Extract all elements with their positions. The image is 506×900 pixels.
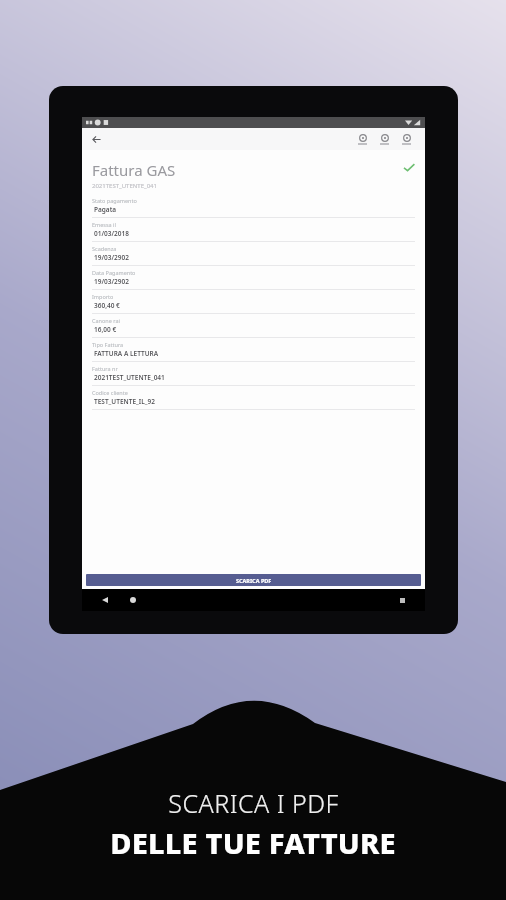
staticText: Emessa il [92, 221, 116, 228]
staticText: 2021TEST_UTENTE_041 [92, 182, 157, 190]
staticText: Data Pagamento [92, 269, 136, 276]
button[interactable]: Settings [397, 129, 415, 149]
staticText: 360,40 € [94, 301, 120, 310]
staticText: Fattura nr [92, 365, 118, 372]
staticText: Tipo Fattura [92, 341, 124, 348]
staticText: 19/03/2902 [94, 277, 129, 286]
button[interactable]: Home [126, 593, 140, 607]
button[interactable]: Back [88, 131, 104, 147]
button[interactable]: Refresh [375, 129, 393, 149]
staticText: 2021TEST_UTENTE_041 [94, 373, 165, 382]
button[interactable]: Back [98, 593, 112, 607]
staticText: 19/03/2902 [94, 253, 129, 262]
staticText: Stato pagamento [92, 197, 137, 204]
staticText: SCARICA PDF [236, 577, 272, 584]
staticText: Importo [92, 293, 114, 300]
staticText: Canone rai [92, 317, 120, 324]
staticText: FATTURA A LETTURA [94, 349, 159, 358]
button[interactable]: Share [353, 129, 371, 149]
staticText: SCARICA I PDF [168, 786, 339, 820]
button[interactable]: Recent apps [395, 593, 409, 607]
staticText: Codice cliente [92, 389, 128, 396]
staticText: Pagata [94, 205, 117, 214]
staticText: 16,00 € [94, 325, 117, 334]
button[interactable]: SCARICA PDF [86, 574, 421, 586]
staticText: Fattura GAS [92, 160, 176, 180]
staticText: DELLE TUE FATTURE [110, 823, 396, 862]
staticText: 01/03/2018 [94, 229, 129, 238]
staticText: TEST_UTENTE_IL_92 [94, 397, 155, 406]
staticText: Scadenza [92, 245, 117, 252]
